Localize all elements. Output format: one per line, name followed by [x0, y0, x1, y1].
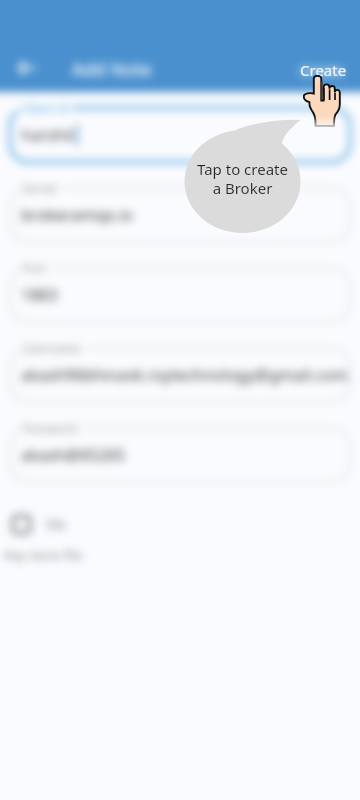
- staticText: akash96bhinavk.roytechnology@gmail.com: [21, 364, 348, 386]
- staticText: Password: [22, 420, 77, 436]
- button[interactable]: broker.emqx.io: [10, 188, 350, 242]
- button[interactable]: Create: [292, 53, 355, 87]
- staticText: broker.emqx.io: [21, 204, 134, 226]
- staticText: SSL: [46, 515, 68, 533]
- button[interactable]: akash@65265: [10, 428, 350, 482]
- other: Tap here: [303, 75, 344, 130]
- button[interactable]: SSL: [13, 511, 52, 537]
- button[interactable]: Key store file: [4, 546, 83, 564]
- button[interactable]: harshit: [10, 108, 350, 162]
- staticText: Username: [22, 340, 81, 356]
- staticText: akash@65265: [21, 444, 126, 466]
- staticText: Client id: [22, 100, 68, 116]
- staticText: 1883: [21, 284, 58, 306]
- button[interactable]: akash96bhinavk.roytechnology@gmail.com: [10, 348, 350, 402]
- staticText: Create: [300, 61, 344, 80]
- staticText: Tap to create a Broker: [190, 159, 295, 198]
- staticText: Add Note: [72, 57, 152, 82]
- staticText: Create: [300, 60, 347, 80]
- button[interactable]: 1883: [10, 268, 350, 322]
- staticText: Server: [22, 180, 59, 196]
- staticText: Port: [22, 260, 46, 276]
- staticText: harshit: [21, 124, 74, 146]
